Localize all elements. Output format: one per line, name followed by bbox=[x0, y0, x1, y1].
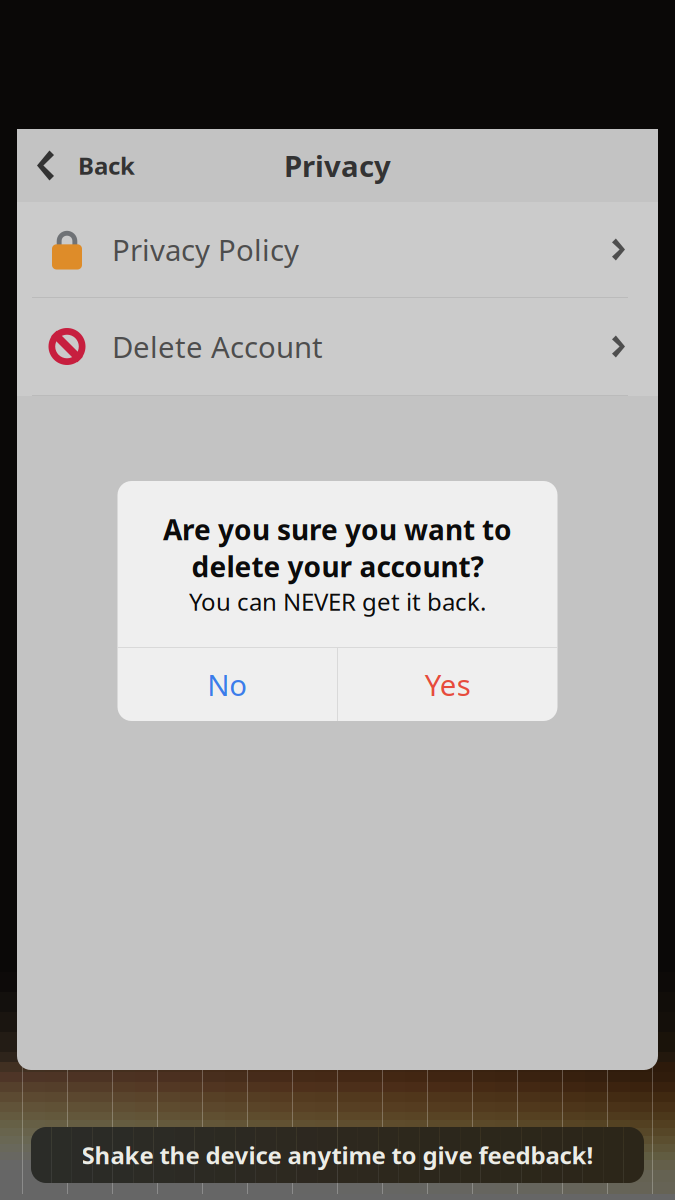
staticText: Shake the device anytime to give feedbac… bbox=[81, 1139, 593, 1171]
button[interactable]: Delete Account bbox=[17, 298, 658, 395]
staticText: delete your account? bbox=[191, 548, 483, 585]
button[interactable]: Privacy Policy bbox=[17, 202, 658, 297]
staticText: You can NEVER get it back. bbox=[189, 586, 486, 617]
button[interactable]: Shake the device anytime to give feedbac… bbox=[31, 1127, 644, 1183]
staticText: Delete Account bbox=[112, 327, 323, 366]
button[interactable]: No bbox=[117, 648, 337, 721]
staticText: Privacy Policy bbox=[112, 230, 299, 269]
staticText: Yes bbox=[425, 665, 471, 704]
button[interactable]: Yes bbox=[338, 648, 557, 721]
staticText: Privacy bbox=[284, 146, 391, 185]
staticText: Back bbox=[78, 150, 135, 181]
staticText: No bbox=[207, 665, 247, 704]
button[interactable]: Back bbox=[17, 129, 151, 202]
staticText: Are you sure you want to bbox=[163, 511, 512, 548]
